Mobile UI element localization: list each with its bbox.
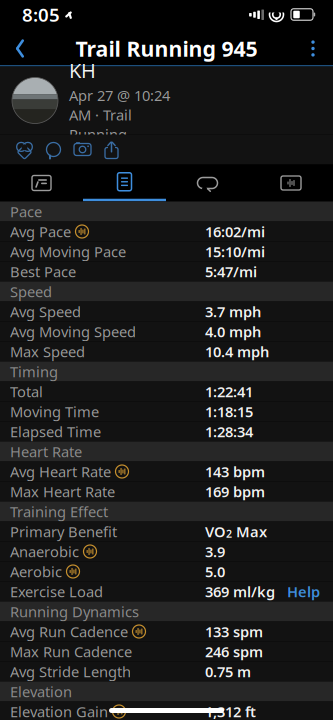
staticText: Timing — [10, 362, 58, 381]
staticText: Training Effect — [10, 502, 108, 521]
button[interactable]: More options — [293, 30, 333, 66]
staticText: Best Pace — [10, 262, 76, 281]
staticText: Pace — [10, 202, 42, 221]
staticText: 1:22:41 — [205, 382, 253, 401]
staticText: 16:02/mi — [205, 222, 265, 241]
staticText: Avg Speed — [10, 302, 81, 321]
staticText: Elevation Gain — [10, 702, 108, 720]
staticText: Anaerobic — [10, 542, 79, 561]
staticText: Max Run Cadence — [10, 642, 132, 661]
staticText: 5.0 — [205, 562, 225, 581]
button[interactable]: Comment — [39, 135, 68, 163]
staticText: Avg Moving Speed — [10, 322, 136, 341]
staticText: Avg Run Cadence — [10, 622, 128, 641]
button[interactable]: Details — [83, 164, 166, 201]
staticText: Trail Running 945 — [75, 34, 257, 63]
staticText: Apr 27 @ 10:24 AM · Trail Running — [69, 86, 170, 144]
staticText: VO — [205, 522, 226, 541]
staticText: Avg Stride Length — [10, 662, 131, 681]
staticText: Help — [287, 582, 320, 601]
staticText: Max — [232, 522, 267, 541]
button[interactable]: Laps — [166, 164, 249, 201]
button[interactable]: KH — [0, 66, 333, 134]
staticText: 1,312 ft — [205, 702, 256, 720]
staticText: 5:47/mi — [205, 262, 257, 281]
staticText: 3.7 mph — [205, 302, 261, 321]
staticText: KH — [69, 57, 96, 84]
staticText: 169 bpm — [205, 482, 265, 501]
button[interactable]: Charts — [249, 164, 333, 201]
staticText: 369 ml/kg — [205, 582, 275, 601]
button[interactable]: Share — [97, 135, 126, 163]
staticText: 15:10/mi — [205, 242, 265, 261]
staticText: Avg Heart Rate — [10, 462, 111, 481]
staticText: Avg Moving Pace — [10, 242, 126, 261]
staticText: 10.4 mph — [205, 342, 269, 361]
staticText: 4.0 mph — [205, 322, 261, 341]
staticText: Avg Pace — [10, 222, 71, 241]
staticText: Running Dynamics — [10, 602, 139, 621]
staticText: Primary Benefit — [10, 522, 117, 541]
staticText: Exercise Load — [10, 582, 103, 601]
staticText: 3.9 — [205, 542, 225, 561]
button[interactable]: Help — [287, 582, 320, 601]
staticText: 2 — [226, 526, 232, 541]
staticText: 143 bpm — [205, 462, 265, 481]
staticText: Speed — [10, 282, 52, 301]
staticText: Max Heart Rate — [10, 482, 115, 501]
staticText: Moving Time — [10, 402, 99, 421]
staticText: 8:05 — [22, 2, 60, 27]
staticText: 133 spm — [205, 622, 263, 641]
staticText: Heart Rate — [10, 442, 82, 461]
staticText: Elevation — [10, 682, 72, 701]
staticText: Max Speed — [10, 342, 85, 361]
staticText: Aerobic — [10, 562, 62, 581]
staticText: Elapsed Time — [10, 422, 101, 441]
button[interactable]: Map — [0, 164, 83, 201]
staticText: 1:28:34 — [205, 422, 253, 441]
staticText: 0.75 m — [205, 662, 251, 681]
staticText: 1:18:15 — [205, 402, 253, 421]
button[interactable]: Back — [0, 30, 40, 66]
button[interactable]: Like — [10, 135, 39, 163]
button[interactable]: Add photo — [68, 135, 97, 163]
staticText: 246 spm — [205, 642, 263, 661]
staticText: Total — [10, 382, 43, 401]
